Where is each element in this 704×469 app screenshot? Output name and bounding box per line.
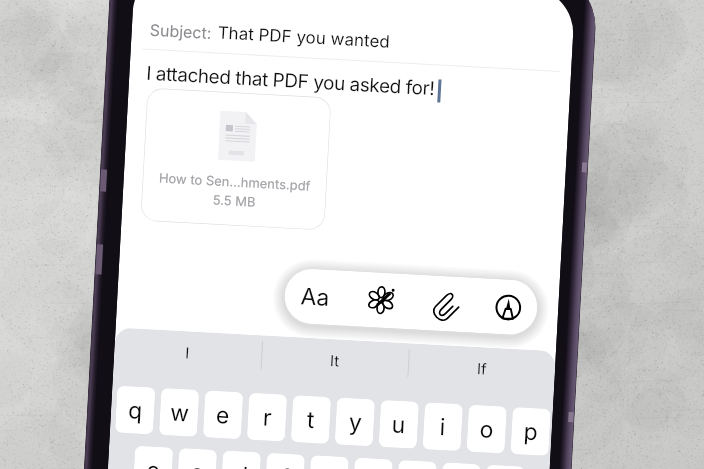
staticText: r	[262, 403, 273, 432]
button[interactable]: y	[335, 397, 375, 446]
staticText: If	[476, 359, 487, 377]
button[interactable]: q	[115, 385, 155, 434]
staticText: That PDF you wanted	[217, 22, 391, 53]
button[interactable]: I	[113, 327, 262, 385]
staticText: I attached that PDF you asked for!	[146, 62, 436, 100]
button[interactable]: h	[352, 457, 393, 469]
staticText: y	[348, 408, 363, 437]
button[interactable]: Text format	[285, 268, 344, 325]
staticText: d	[233, 461, 250, 469]
button[interactable]: d	[221, 450, 261, 469]
button[interactable]: Markup	[479, 278, 538, 336]
button[interactable]: It	[261, 335, 409, 393]
button[interactable]: o	[466, 405, 507, 454]
staticText: p	[523, 418, 539, 446]
staticText: e	[215, 401, 231, 430]
button[interactable]: Attach file	[417, 275, 476, 333]
staticText: s	[190, 459, 205, 469]
staticText: Subject:	[149, 20, 212, 42]
staticText: q	[127, 396, 144, 425]
button[interactable]: Writing tools	[351, 271, 410, 329]
button[interactable]: i	[422, 402, 463, 451]
button[interactable]: e	[203, 390, 243, 439]
staticText: u	[391, 410, 406, 439]
button[interactable]: If	[407, 343, 556, 401]
button[interactable]: j	[396, 460, 437, 469]
button[interactable]: How to Sen...hments.pdf	[140, 88, 331, 230]
button[interactable]: s	[177, 448, 217, 469]
button[interactable]: r	[247, 393, 287, 442]
staticText: How to Sen...hments.pdf	[158, 169, 311, 194]
staticText: Aa	[300, 282, 330, 312]
button[interactable]: t	[291, 395, 331, 444]
staticText: w	[169, 398, 190, 427]
staticText: o	[479, 415, 494, 444]
button[interactable]: a	[133, 446, 173, 469]
staticText: It	[330, 351, 341, 369]
button[interactable]: l	[484, 465, 525, 469]
staticText: a	[146, 456, 161, 469]
staticText: i	[439, 413, 446, 441]
staticText: I	[185, 343, 191, 361]
button[interactable]: g	[308, 455, 349, 469]
staticText: t	[306, 406, 316, 434]
button[interactable]: k	[440, 462, 481, 469]
button[interactable]: w	[159, 388, 199, 437]
staticText: 5.5 MB	[212, 191, 256, 210]
staticText: f	[280, 463, 290, 469]
button[interactable]: u	[379, 400, 419, 449]
button[interactable]: p	[510, 407, 551, 456]
button[interactable]: f	[264, 453, 305, 469]
